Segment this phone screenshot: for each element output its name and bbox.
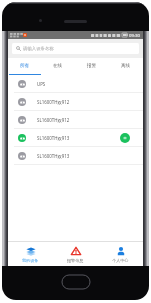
staticText: 离线 xyxy=(121,63,131,69)
button[interactable]: 离线 xyxy=(109,58,143,75)
staticText: SL1600TH双912 xyxy=(37,117,70,123)
button[interactable]: 请输入设备名称 xyxy=(12,43,139,54)
button[interactable]: SL1600TH双913 xyxy=(8,129,143,147)
staticText: SL1600TH双913 xyxy=(37,135,70,141)
button[interactable]: 报警信息 xyxy=(53,242,98,266)
staticText: 所有 xyxy=(20,63,30,69)
button[interactable]: 报警 xyxy=(75,58,109,75)
staticText: SL1600TH双913 xyxy=(37,153,70,159)
button[interactable]: UPS xyxy=(8,75,143,93)
button[interactable]: 个人中心 xyxy=(98,242,143,266)
button[interactable]: 我的设备 xyxy=(8,242,53,266)
other: 报警信息 xyxy=(71,246,81,256)
staticText: 报警信息 xyxy=(67,258,84,263)
staticText: SL1600TH双912 xyxy=(37,99,70,105)
button[interactable]: SL1600TH双912 xyxy=(8,111,143,129)
staticText: 我的设备 xyxy=(22,258,39,263)
staticText: UPS xyxy=(37,81,46,87)
button[interactable]: 所有 xyxy=(8,58,41,75)
button[interactable]: SL1600TH双912 xyxy=(8,93,143,111)
staticText: 报警 xyxy=(87,63,97,69)
other: 我的设备 xyxy=(26,246,36,256)
staticText: 个人中心 xyxy=(112,258,129,263)
staticText: 请输入设备名称 xyxy=(23,46,54,52)
staticText: 在线 xyxy=(53,63,63,69)
button[interactable]: 在线 xyxy=(41,58,75,75)
other: 个人中心 xyxy=(116,246,126,256)
staticText: 09:30 xyxy=(129,32,140,38)
button[interactable]: SL1600TH双913 xyxy=(8,147,143,165)
